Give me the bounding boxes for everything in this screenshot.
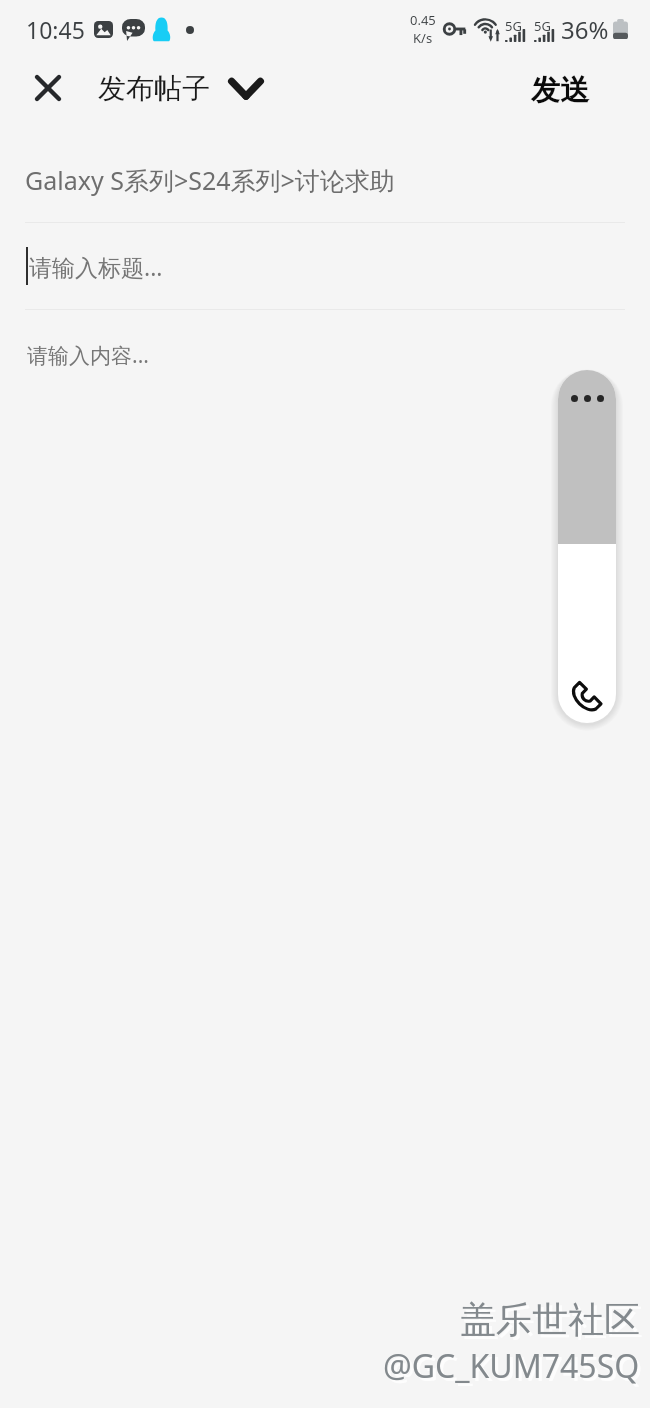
button[interactable]: Close: [13, 56, 83, 120]
staticText: 请输入标题...: [29, 251, 163, 282]
staticText: K/s: [413, 29, 433, 47]
staticText: 5G: [505, 17, 522, 35]
staticText: 36%: [561, 13, 609, 46]
staticText: Galaxy S系列>S24系列>讨论求助: [25, 163, 395, 197]
staticText: 发送: [531, 72, 589, 109]
button[interactable]: 请输入内容...: [0, 310, 650, 400]
button[interactable]: Galaxy S系列>S24系列>讨论求助: [0, 150, 650, 210]
button[interactable]: Floating call assistant: [558, 370, 616, 723]
staticText: 请输入内容...: [27, 341, 149, 370]
button[interactable]: 发送: [501, 60, 619, 121]
staticText: 5G: [534, 17, 551, 35]
staticText: 盖乐世社区: [463, 1300, 643, 1345]
staticText: 发布帖子: [98, 71, 210, 106]
staticText: 盖乐世社区: [460, 1297, 640, 1342]
staticText: 10:45: [26, 14, 85, 45]
staticText: 0.45: [410, 11, 436, 29]
button[interactable]: 请输入标题...: [0, 223, 650, 309]
staticText: @GC_KUM745SQ: [383, 1344, 640, 1388]
button[interactable]: 发布帖子: [86, 63, 276, 114]
staticText: @GC_KUM745SQ: [386, 1347, 643, 1391]
